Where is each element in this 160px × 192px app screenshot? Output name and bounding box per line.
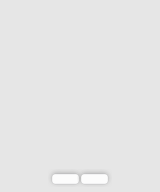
button[interactable]: Button: [81, 174, 108, 184]
button[interactable]: Button: [52, 174, 79, 184]
